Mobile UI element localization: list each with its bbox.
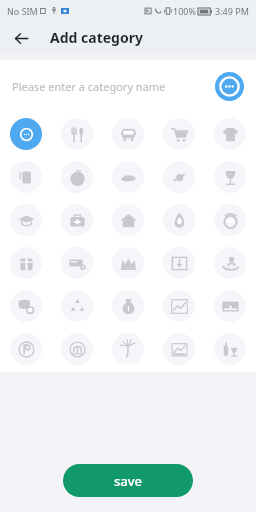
button[interactable]: Category icon 17 [112, 247, 144, 279]
button[interactable]: Category icon 13 [163, 204, 195, 236]
button[interactable]: Category icon 4 [214, 118, 246, 150]
button[interactable]: Category icon 21 [61, 290, 93, 322]
button[interactable]: Category icon 2 [112, 118, 144, 150]
button[interactable]: Category icon 15 [10, 247, 42, 279]
button[interactable]: Category icon 20 [10, 290, 42, 322]
button[interactable]: Category icon 26 [61, 333, 93, 365]
button[interactable]: Selected category icon [215, 72, 244, 101]
button[interactable]: Category icon 10 [10, 204, 42, 236]
button[interactable]: Category icon 23 [163, 290, 195, 322]
button[interactable]: Category icon 6 [61, 161, 93, 193]
button[interactable]: save [63, 464, 193, 497]
button[interactable]: Category icon 9 [214, 161, 246, 193]
staticText: 100% [173, 5, 196, 17]
button[interactable]: Back [8, 25, 34, 51]
button[interactable]: Category icon 3 [163, 118, 195, 150]
button[interactable]: Category icon 28 [163, 333, 195, 365]
button[interactable]: Category icon 19 [214, 247, 246, 279]
button[interactable]: Category icon 16 [61, 247, 93, 279]
button[interactable]: Please enter a category name [12, 79, 166, 94]
button[interactable]: Category icon 7 [112, 161, 144, 193]
staticText: No SIM [7, 5, 38, 17]
button[interactable]: Category icon 5 [10, 161, 42, 193]
button[interactable]: Category icon 0 [10, 118, 42, 150]
staticText: 3:49 PM [215, 5, 249, 17]
staticText: Add category [50, 28, 143, 47]
button[interactable]: Category icon 12 [112, 204, 144, 236]
staticText: save [114, 472, 143, 490]
button[interactable]: Category icon 29 [214, 333, 246, 365]
button[interactable]: Category icon 24 [214, 290, 246, 322]
button[interactable]: Category icon 14 [214, 204, 246, 236]
button[interactable]: Category icon 25 [10, 333, 42, 365]
button[interactable]: Category icon 18 [163, 247, 195, 279]
button[interactable]: Category icon 22 [112, 290, 144, 322]
button[interactable]: Category icon 27 [112, 333, 144, 365]
button[interactable]: Category icon 1 [61, 118, 93, 150]
button[interactable]: Category icon 11 [61, 204, 93, 236]
button[interactable]: Category icon 8 [163, 161, 195, 193]
